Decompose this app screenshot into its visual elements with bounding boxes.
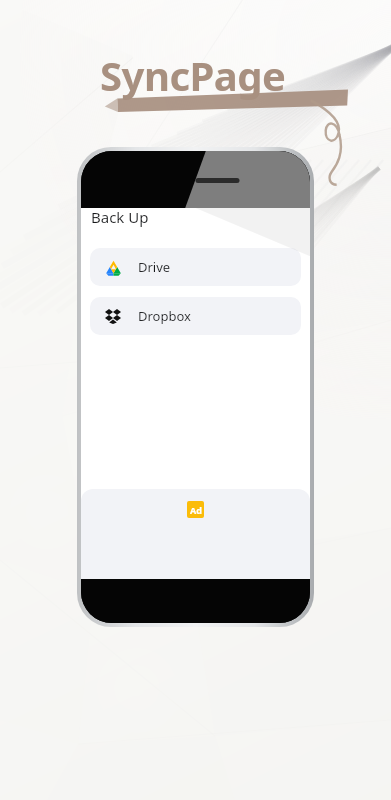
button[interactable]: Drive: [90, 248, 301, 286]
staticText: SyncPage: [100, 48, 391, 102]
button[interactable]: Ad: [187, 501, 204, 518]
staticText: Back Up: [91, 207, 149, 227]
button[interactable]: Dropbox: [90, 297, 301, 335]
staticText: Dropbox: [138, 307, 191, 325]
staticText: Ad: [190, 504, 202, 516]
staticText: Drive: [138, 258, 171, 276]
